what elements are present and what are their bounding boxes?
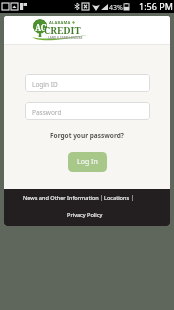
button[interactable]: Login ID [25, 74, 150, 92]
button[interactable]: Locations [104, 194, 130, 202]
staticText: 43% [109, 3, 123, 13]
button[interactable]: Forgot your password? [50, 131, 124, 140]
button[interactable]: Log In [68, 152, 107, 172]
staticText: ALABAMA [49, 20, 71, 25]
staticText: CREDIT [44, 24, 81, 37]
staticText: 1:56 PM [139, 0, 173, 12]
staticText: Log In [77, 157, 98, 167]
staticText: LAND & FARM LENDERS [48, 36, 83, 40]
button[interactable]: Password [25, 102, 150, 120]
staticText: AG [35, 22, 48, 33]
button[interactable]: Privacy Policy [67, 211, 103, 219]
staticText: Login ID [32, 80, 58, 89]
staticText: Password [32, 108, 62, 117]
button[interactable]: News and Other Information [23, 194, 99, 202]
